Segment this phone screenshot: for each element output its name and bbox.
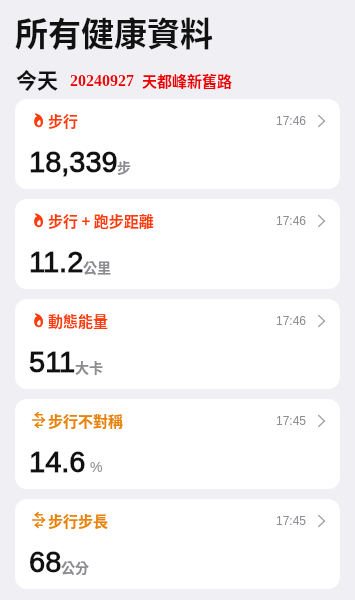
button[interactable]: Open details	[308, 109, 334, 133]
staticText: 17:45	[276, 414, 307, 427]
staticText: 18,339	[29, 146, 118, 178]
staticText: 大卡	[75, 357, 103, 377]
staticText: 11.2	[29, 246, 84, 278]
staticText: 14.6	[29, 446, 86, 478]
button[interactable]: 步行	[15, 99, 340, 189]
staticText: 公分	[61, 557, 89, 577]
button[interactable]: 步行不對稱	[15, 399, 340, 489]
button[interactable]: 步行步長	[15, 499, 340, 589]
staticText: 步行 + 跑步距離	[48, 210, 154, 232]
staticText: %	[90, 459, 103, 475]
staticText: 今天	[16, 64, 58, 94]
staticText: 動態能量	[48, 310, 109, 332]
button[interactable]: Open details	[308, 509, 334, 533]
staticText: 17:46	[276, 314, 307, 327]
button[interactable]: 動態能量	[15, 299, 340, 389]
staticText: 天都峰新舊路	[142, 70, 233, 92]
staticText: 20240927	[70, 72, 134, 90]
staticText: 68	[29, 546, 62, 578]
staticText: 17:45	[276, 514, 307, 527]
button[interactable]: Open details	[308, 209, 334, 233]
button[interactable]: 步行 + 跑步距離	[15, 199, 340, 289]
staticText: 步行	[48, 110, 79, 132]
staticText: 17:46	[276, 214, 307, 227]
staticText: 511	[29, 346, 76, 378]
staticText: 17:46	[276, 114, 307, 127]
button[interactable]: Open details	[308, 309, 334, 333]
staticText: 步行步長	[48, 510, 109, 532]
staticText: 所有健康資料	[15, 8, 213, 56]
staticText: 公里	[83, 257, 111, 277]
staticText: 步行不對稱	[48, 410, 124, 432]
button[interactable]: Open details	[308, 409, 334, 433]
staticText: 步	[117, 157, 131, 177]
